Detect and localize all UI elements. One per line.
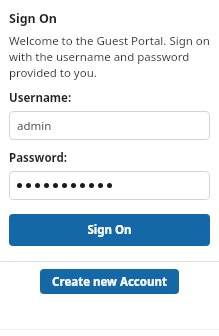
button[interactable]: Create new Account <box>40 269 179 294</box>
button[interactable]: admin <box>9 111 210 140</box>
button[interactable] <box>9 171 210 200</box>
staticText: Create new Account <box>52 274 167 290</box>
staticText: Sign On <box>87 222 132 238</box>
button[interactable]: Sign On <box>9 214 210 246</box>
staticText: Password: <box>9 150 68 166</box>
staticText: Welcome to the Guest Portal. Sign on wit… <box>9 33 210 81</box>
staticText: admin <box>17 118 52 134</box>
staticText: Sign On <box>9 10 57 27</box>
staticText: Username: <box>9 90 72 106</box>
